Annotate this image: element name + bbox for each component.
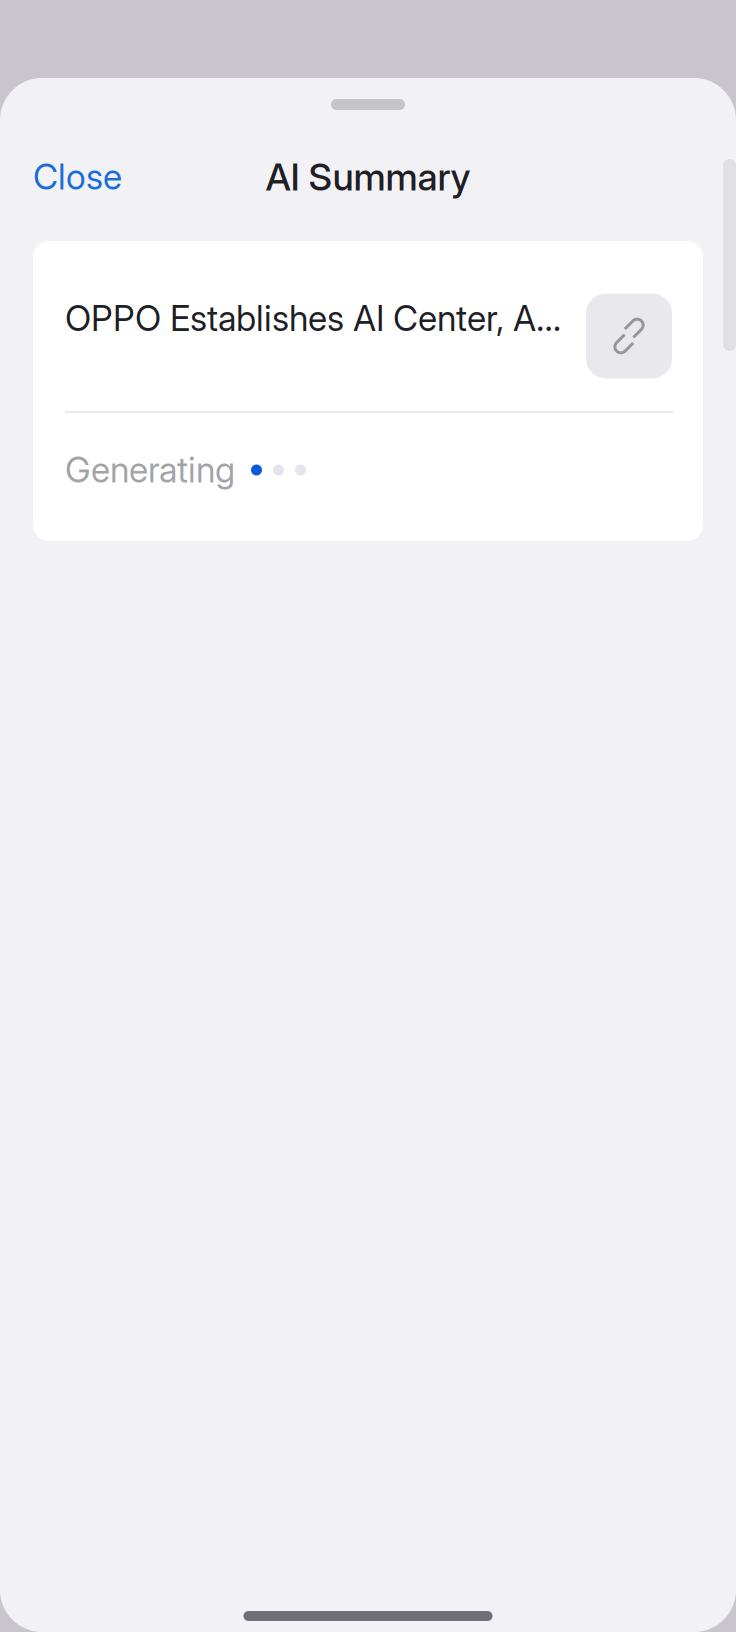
staticText: Generating: [65, 449, 235, 491]
staticText: OPPO Establishes AI Center, A…: [65, 297, 561, 339]
button[interactable]: Open link: [586, 293, 672, 378]
button[interactable]: Close: [0, 149, 133, 205]
staticText: AI Summary: [265, 154, 470, 200]
staticText: Close: [33, 156, 122, 198]
button[interactable]: OPPO Establishes AI Center, A…: [33, 297, 703, 354]
